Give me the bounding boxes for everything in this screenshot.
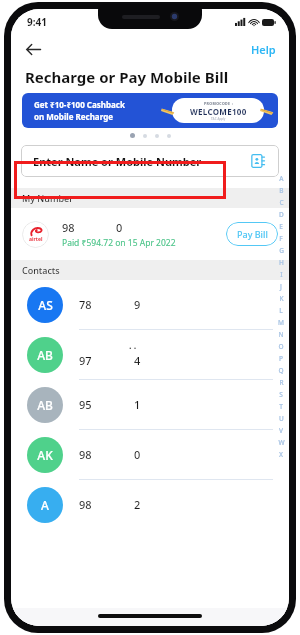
staticText: 98: [62, 220, 75, 235]
staticText: 95: [79, 397, 92, 412]
staticText: N: [278, 330, 284, 339]
button[interactable]: airtel: [11, 208, 289, 260]
staticText: K: [279, 294, 284, 303]
button[interactable]: Pay Bill: [226, 222, 278, 246]
staticText: 2: [134, 497, 141, 512]
staticText: Contacts: [22, 264, 60, 276]
staticText: M: [278, 318, 284, 327]
button[interactable]: Get ₹10-₹100 Cashback: [22, 93, 278, 128]
button[interactable]: Alphabet index: [275, 174, 287, 462]
staticText: Pay Bill: [237, 228, 268, 240]
staticText: J: [280, 282, 282, 291]
staticText: Enter Name or Mobile Number: [33, 154, 202, 169]
staticText: 98: [79, 447, 92, 462]
staticText: 9: [134, 297, 141, 312]
staticText: V: [279, 426, 283, 435]
staticText: 4: [134, 353, 141, 368]
staticText: X: [279, 450, 283, 459]
staticText: 9:41: [27, 15, 47, 29]
staticText: My Number: [22, 192, 74, 204]
button[interactable]: A: [11, 480, 289, 529]
staticText: 0: [134, 447, 141, 462]
staticText: R: [279, 378, 284, 387]
staticText: P: [279, 354, 283, 363]
staticText: AB: [37, 347, 53, 363]
staticText: airtel: [29, 236, 43, 243]
staticText: 1: [134, 397, 141, 412]
staticText: 97: [79, 353, 92, 368]
button[interactable]: Enter Name or Mobile Number: [21, 145, 279, 177]
staticText: A: [279, 174, 284, 183]
staticText: T&C Apply: [211, 117, 226, 121]
staticText: T: [279, 402, 283, 411]
button[interactable]: AB: [11, 330, 289, 379]
staticText: on Mobile Recharge: [34, 111, 113, 122]
staticText: U: [279, 414, 284, 423]
staticText: AK: [37, 447, 53, 463]
button[interactable]: Back: [19, 35, 47, 63]
staticText: AB: [37, 397, 53, 413]
staticText: Help: [251, 42, 276, 57]
staticText: Paid ₹594.72 on 15 Apr 2022: [62, 237, 176, 249]
button[interactable]: Pick contact: [248, 151, 268, 171]
staticText: L: [279, 306, 283, 315]
staticText: WELCOME100: [190, 106, 247, 117]
button[interactable]: AS: [11, 280, 289, 329]
staticText: Get ₹10-₹100 Cashback: [34, 99, 125, 110]
staticText: 98: [79, 497, 92, 512]
staticText: F: [279, 234, 283, 243]
staticText: A: [41, 497, 49, 513]
staticText: S: [279, 390, 283, 399]
staticText: B: [279, 186, 284, 195]
staticText: O: [278, 342, 284, 351]
staticText: C: [279, 198, 284, 207]
staticText: 78: [79, 297, 92, 312]
staticText: PROMOCODE :: [204, 101, 234, 106]
staticText: I: [280, 270, 283, 279]
staticText: · ·: [129, 341, 137, 353]
staticText: D: [279, 210, 284, 219]
staticText: E: [279, 222, 283, 231]
staticText: AS: [38, 297, 53, 313]
button[interactable]: AB: [11, 380, 289, 429]
staticText: 0: [116, 220, 123, 235]
staticText: Recharge or Pay Mobile Bill: [25, 67, 229, 87]
staticText: G: [279, 246, 284, 255]
staticText: W: [278, 438, 285, 447]
button[interactable]: Help: [248, 39, 279, 60]
staticText: Q: [278, 366, 284, 375]
button[interactable]: AK: [11, 430, 289, 479]
staticText: H: [279, 258, 284, 267]
